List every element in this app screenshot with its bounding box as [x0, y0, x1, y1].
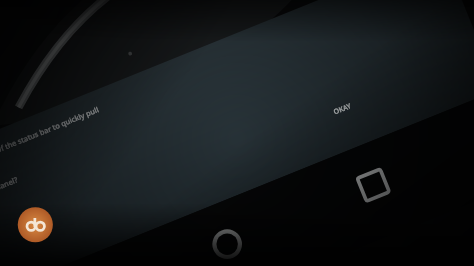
button[interactable]: Back: [222, 196, 250, 224]
button[interactable]: Home: [281, 155, 309, 183]
